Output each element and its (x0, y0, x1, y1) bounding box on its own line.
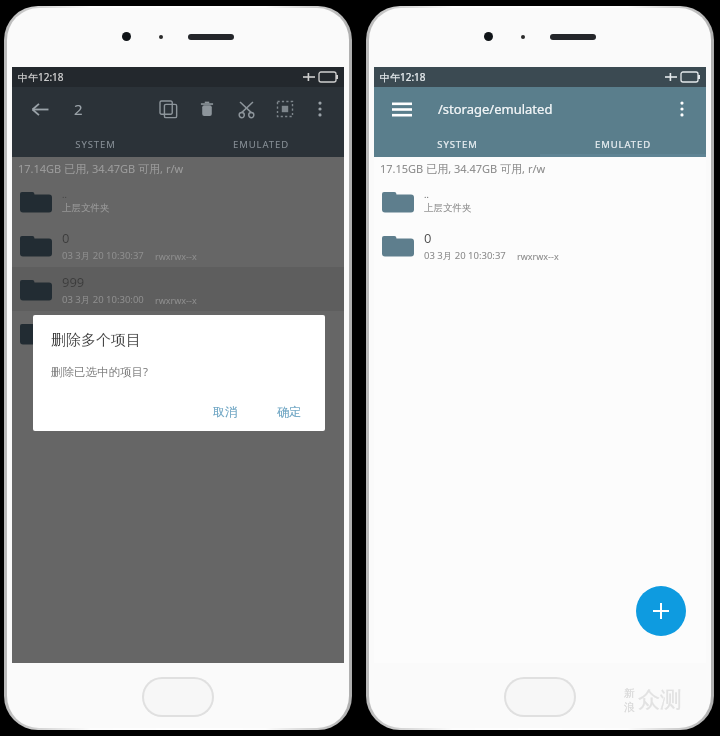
button[interactable]: Back (22, 91, 58, 127)
staticText: .. (424, 188, 429, 200)
staticText: 0 (62, 229, 70, 247)
button[interactable]: SYSTEM (12, 131, 178, 157)
staticText: 浪 (624, 700, 635, 714)
button[interactable]: Select all (269, 93, 301, 125)
staticText: 中午12:18 (18, 70, 64, 84)
button[interactable]: More options (668, 95, 696, 123)
staticText: rwxrwx--x (517, 250, 559, 262)
staticText: 删除多个项目 (51, 331, 141, 350)
staticText: 03 3月 20 10:30:37 (62, 249, 144, 262)
staticText: rwxrwx--x (155, 250, 197, 262)
staticText: EMULATED (233, 138, 289, 151)
button[interactable]: EMULATED (540, 131, 706, 157)
button[interactable]: Copy (152, 93, 184, 125)
button[interactable]: Open navigation drawer (384, 91, 420, 127)
staticText: SYSTEM (75, 138, 116, 151)
staticText: 14 11月 72 21:55:58 (62, 337, 150, 350)
staticText: /storage/emulated (438, 100, 553, 118)
staticText: 确定 (277, 404, 301, 419)
button[interactable]: EMULATED (178, 131, 344, 157)
staticText: 17.15GB 已用, 34.47GB 可用, r/w (380, 161, 546, 176)
staticText: 上层文件夹 (424, 202, 472, 214)
button[interactable]: Add (636, 586, 686, 636)
staticText: 众测 (638, 686, 682, 714)
button[interactable]: More options (306, 95, 334, 123)
staticText: 03 3月 20 10:30:37 (424, 249, 506, 262)
staticText: 2 (74, 99, 83, 119)
button[interactable]: .. (12, 179, 344, 223)
button[interactable]: 0 (12, 223, 344, 267)
staticText: 新 (624, 686, 635, 700)
button[interactable]: 0 (374, 223, 706, 267)
staticText: 删除已选中的项目? (51, 364, 148, 380)
staticText: 上层文件夹 (62, 202, 110, 214)
button[interactable]: obb (12, 311, 344, 355)
staticText: 中午12:18 (380, 70, 426, 84)
staticText: SYSTEM (437, 138, 478, 151)
staticText: rwxrwx--x (155, 294, 197, 306)
button[interactable]: Delete (191, 93, 223, 125)
staticText: .. (62, 188, 67, 200)
button[interactable]: .. (374, 179, 706, 223)
button[interactable]: 取消 (201, 398, 249, 425)
button[interactable]: SYSTEM (374, 131, 540, 157)
staticText: obb (62, 317, 86, 335)
staticText: 03 3月 20 10:30:00 (62, 293, 144, 306)
button[interactable]: Cut (230, 93, 262, 125)
staticText: 999 (62, 273, 85, 291)
button[interactable]: 999 (12, 267, 344, 311)
button[interactable]: 确定 (265, 398, 313, 425)
staticText: 取消 (213, 404, 237, 419)
staticText: 17.14GB 已用, 34.47GB 可用, r/w (18, 161, 184, 176)
staticText: EMULATED (595, 138, 651, 151)
staticText: 0 (424, 229, 432, 247)
